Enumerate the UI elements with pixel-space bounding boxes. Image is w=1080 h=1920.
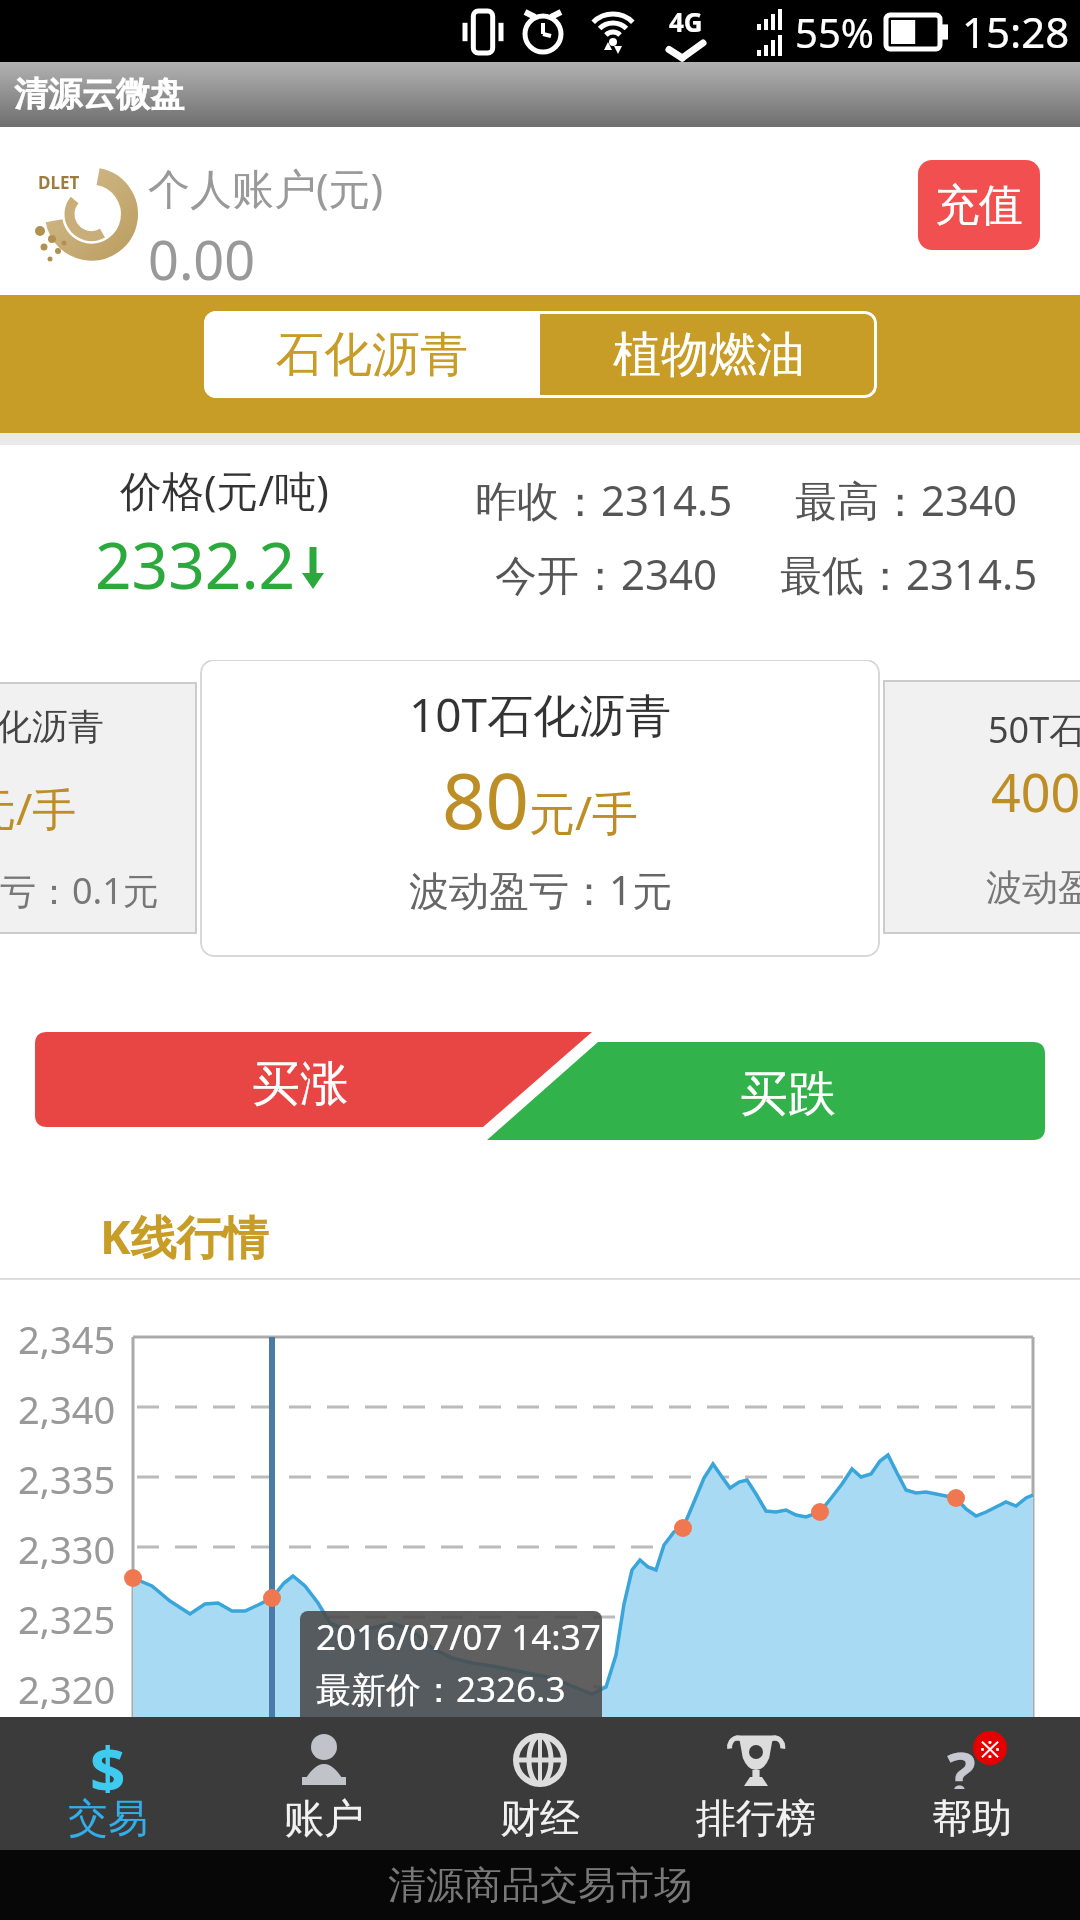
staticText: ? <box>947 1731 976 1789</box>
staticText: 账户 <box>284 1793 364 1843</box>
staticText: 最低：2314.5 <box>780 545 1038 602</box>
staticText: 植物燃油 <box>613 325 805 385</box>
staticText: 买跌 <box>740 1064 836 1124</box>
staticText: 元/手 <box>529 781 639 844</box>
staticText: 波动盈亏：1元 <box>409 862 672 917</box>
button[interactable]: 充值 <box>918 160 1040 250</box>
button[interactable]: ? <box>864 1717 1080 1850</box>
staticText: ※ <box>980 1732 1001 1765</box>
staticText: 2,345 <box>18 1313 116 1361</box>
button[interactable]: 财经 <box>432 1717 648 1850</box>
button[interactable]: 植物燃油 <box>540 311 877 398</box>
staticText: 石化沥青 <box>276 325 468 385</box>
staticText: K线行情 <box>100 1205 269 1268</box>
staticText: 50T石化沥青 <box>988 705 1080 754</box>
staticText: 财经 <box>500 1793 580 1843</box>
staticText: 帮助 <box>932 1793 1012 1843</box>
staticText: 波动盈亏：0.1元 <box>0 866 159 915</box>
staticText: 400 <box>991 756 1080 827</box>
staticText: 充值 <box>935 178 1023 233</box>
staticText: 10T石化沥青 <box>409 683 672 746</box>
staticText: 波动盈亏：2元 <box>986 862 1080 911</box>
staticText: 2332.2 <box>95 521 296 608</box>
staticText: 石化沥青 <box>0 704 104 749</box>
staticText: 2,325 <box>18 1593 116 1641</box>
staticText: $ <box>90 1727 126 1793</box>
staticText: 2,335 <box>18 1453 116 1501</box>
staticText: 2,320 <box>18 1663 116 1711</box>
staticText: 价格(元/吨) <box>120 461 329 518</box>
button[interactable]: 石化沥青 <box>204 311 540 398</box>
staticText: 交易 <box>68 1793 148 1843</box>
staticText: 0.00 <box>148 222 256 296</box>
staticText: 元/手 <box>0 778 77 838</box>
button[interactable] <box>540 1032 1080 1142</box>
staticText: 2,340 <box>18 1383 116 1431</box>
staticText: 清源云微盘 <box>14 73 184 116</box>
staticText: 昨收：2314.5 <box>475 471 733 528</box>
button[interactable]: 10T石化沥青 <box>200 660 880 957</box>
staticText: 个人账户(元) <box>148 159 384 216</box>
staticText: 4G <box>669 4 703 39</box>
staticText: 今开：2340 <box>495 545 718 602</box>
staticText: DLET <box>38 171 80 194</box>
staticText: 2016/07/07 14:37 <box>316 1613 601 1661</box>
staticText: 清源商品交易市场 <box>388 1861 692 1909</box>
staticText: 55% <box>795 5 874 59</box>
staticText: 买涨 <box>252 1054 348 1114</box>
staticText: 最高：2340 <box>795 471 1018 528</box>
staticText: 15:28 <box>962 3 1070 60</box>
button[interactable] <box>0 1032 540 1142</box>
staticText: 80 <box>442 748 529 852</box>
staticText: 2,330 <box>18 1523 116 1571</box>
button[interactable]: $ <box>0 1717 216 1850</box>
button[interactable]: 账户 <box>216 1717 432 1850</box>
button[interactable]: 排行榜 <box>648 1717 864 1850</box>
staticText: 排行榜 <box>696 1793 816 1843</box>
staticText: 最新价：2326.3 <box>316 1665 566 1713</box>
